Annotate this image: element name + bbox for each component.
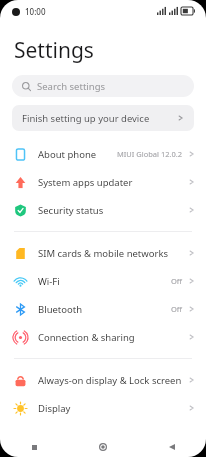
button[interactable]: About phone [0, 140, 206, 168]
button[interactable]: Recent apps [0, 437, 68, 457]
button[interactable]: System apps updater [0, 168, 206, 196]
button[interactable]: Connection & sharing [0, 323, 206, 351]
button[interactable]: Security status [0, 196, 206, 224]
staticText: About phone [38, 148, 117, 161]
button[interactable]: Always-on display & Lock screen [0, 366, 206, 394]
staticText: Search settings [37, 80, 106, 93]
staticText: 10:00 [25, 6, 46, 17]
button[interactable]: SIM cards & mobile networks [0, 239, 206, 267]
staticText: Security status [38, 204, 188, 217]
staticText: Display [38, 402, 188, 415]
staticText: SIM cards & mobile networks [38, 247, 188, 260]
staticText: Off [171, 304, 183, 314]
button[interactable]: Wi-Fi [0, 267, 206, 295]
button[interactable]: Bluetooth [0, 295, 206, 323]
staticText: Connection & sharing [38, 331, 188, 344]
staticText: Always-on display & Lock screen [38, 374, 188, 387]
staticText: Off [171, 276, 183, 286]
staticText: Wi-Fi [38, 275, 171, 288]
staticText: Finish setting up your device [22, 112, 177, 125]
button[interactable]: Search settings [12, 75, 194, 97]
button[interactable]: Back [137, 437, 206, 457]
staticText: Bluetooth [38, 303, 171, 316]
button[interactable]: Display [0, 394, 206, 422]
button[interactable]: Finish setting up your device [12, 105, 194, 131]
button[interactable]: Home [68, 437, 137, 457]
staticText: System apps updater [38, 176, 188, 189]
staticText: Settings [14, 36, 94, 65]
staticText: MIUI Global 12.0.2 [117, 149, 183, 159]
